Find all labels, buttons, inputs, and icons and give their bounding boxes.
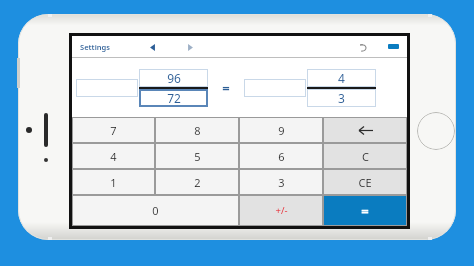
button[interactable]: 5 (155, 143, 239, 169)
staticText: 7 (110, 123, 117, 138)
button[interactable] (244, 79, 306, 97)
button[interactable]: 2 (155, 169, 239, 195)
button[interactable]: 72 (139, 89, 208, 107)
staticText: 3 (338, 90, 345, 106)
button[interactable]: Hide keyboard (388, 44, 399, 49)
staticText: 9 (278, 123, 285, 138)
button[interactable]: 7 (72, 117, 155, 143)
button[interactable]: = (323, 195, 407, 226)
staticText: CE (358, 175, 372, 190)
staticText: 4 (110, 149, 117, 164)
staticText: 5 (194, 149, 201, 164)
button[interactable]: 0 (72, 195, 239, 226)
button[interactable]: 3 (307, 89, 376, 107)
staticText: 6 (278, 149, 285, 164)
button[interactable]: C (323, 143, 407, 169)
button[interactable]: Home (417, 112, 455, 150)
staticText: 0 (152, 203, 159, 218)
staticText: Settings (80, 42, 110, 52)
button[interactable]: 96 (139, 69, 208, 87)
button[interactable]: 8 (155, 117, 239, 143)
staticText: 8 (194, 123, 201, 138)
staticText: 72 (167, 90, 181, 106)
button[interactable]: Backspace (323, 117, 407, 143)
staticText: 4 (338, 70, 345, 86)
staticText: 2 (194, 175, 201, 190)
button[interactable]: Next (182, 39, 198, 55)
staticText: 1 (110, 175, 117, 190)
button[interactable]: 4 (72, 143, 155, 169)
staticText: C (362, 149, 369, 164)
button[interactable]: +/- (239, 195, 323, 226)
button[interactable]: 4 (307, 69, 376, 87)
staticText: = (222, 79, 230, 97)
button[interactable]: Undo (355, 39, 371, 55)
staticText: 96 (167, 70, 181, 86)
button[interactable]: 9 (239, 117, 323, 143)
button[interactable] (76, 79, 138, 97)
staticText: = (361, 202, 369, 220)
button[interactable]: 6 (239, 143, 323, 169)
staticText: 3 (278, 175, 285, 190)
button[interactable]: Previous (144, 39, 160, 55)
button[interactable]: CE (323, 169, 407, 195)
button[interactable]: Settings (78, 39, 112, 55)
button[interactable]: 1 (72, 169, 155, 195)
staticText: +/- (275, 204, 288, 217)
button[interactable]: 3 (239, 169, 323, 195)
